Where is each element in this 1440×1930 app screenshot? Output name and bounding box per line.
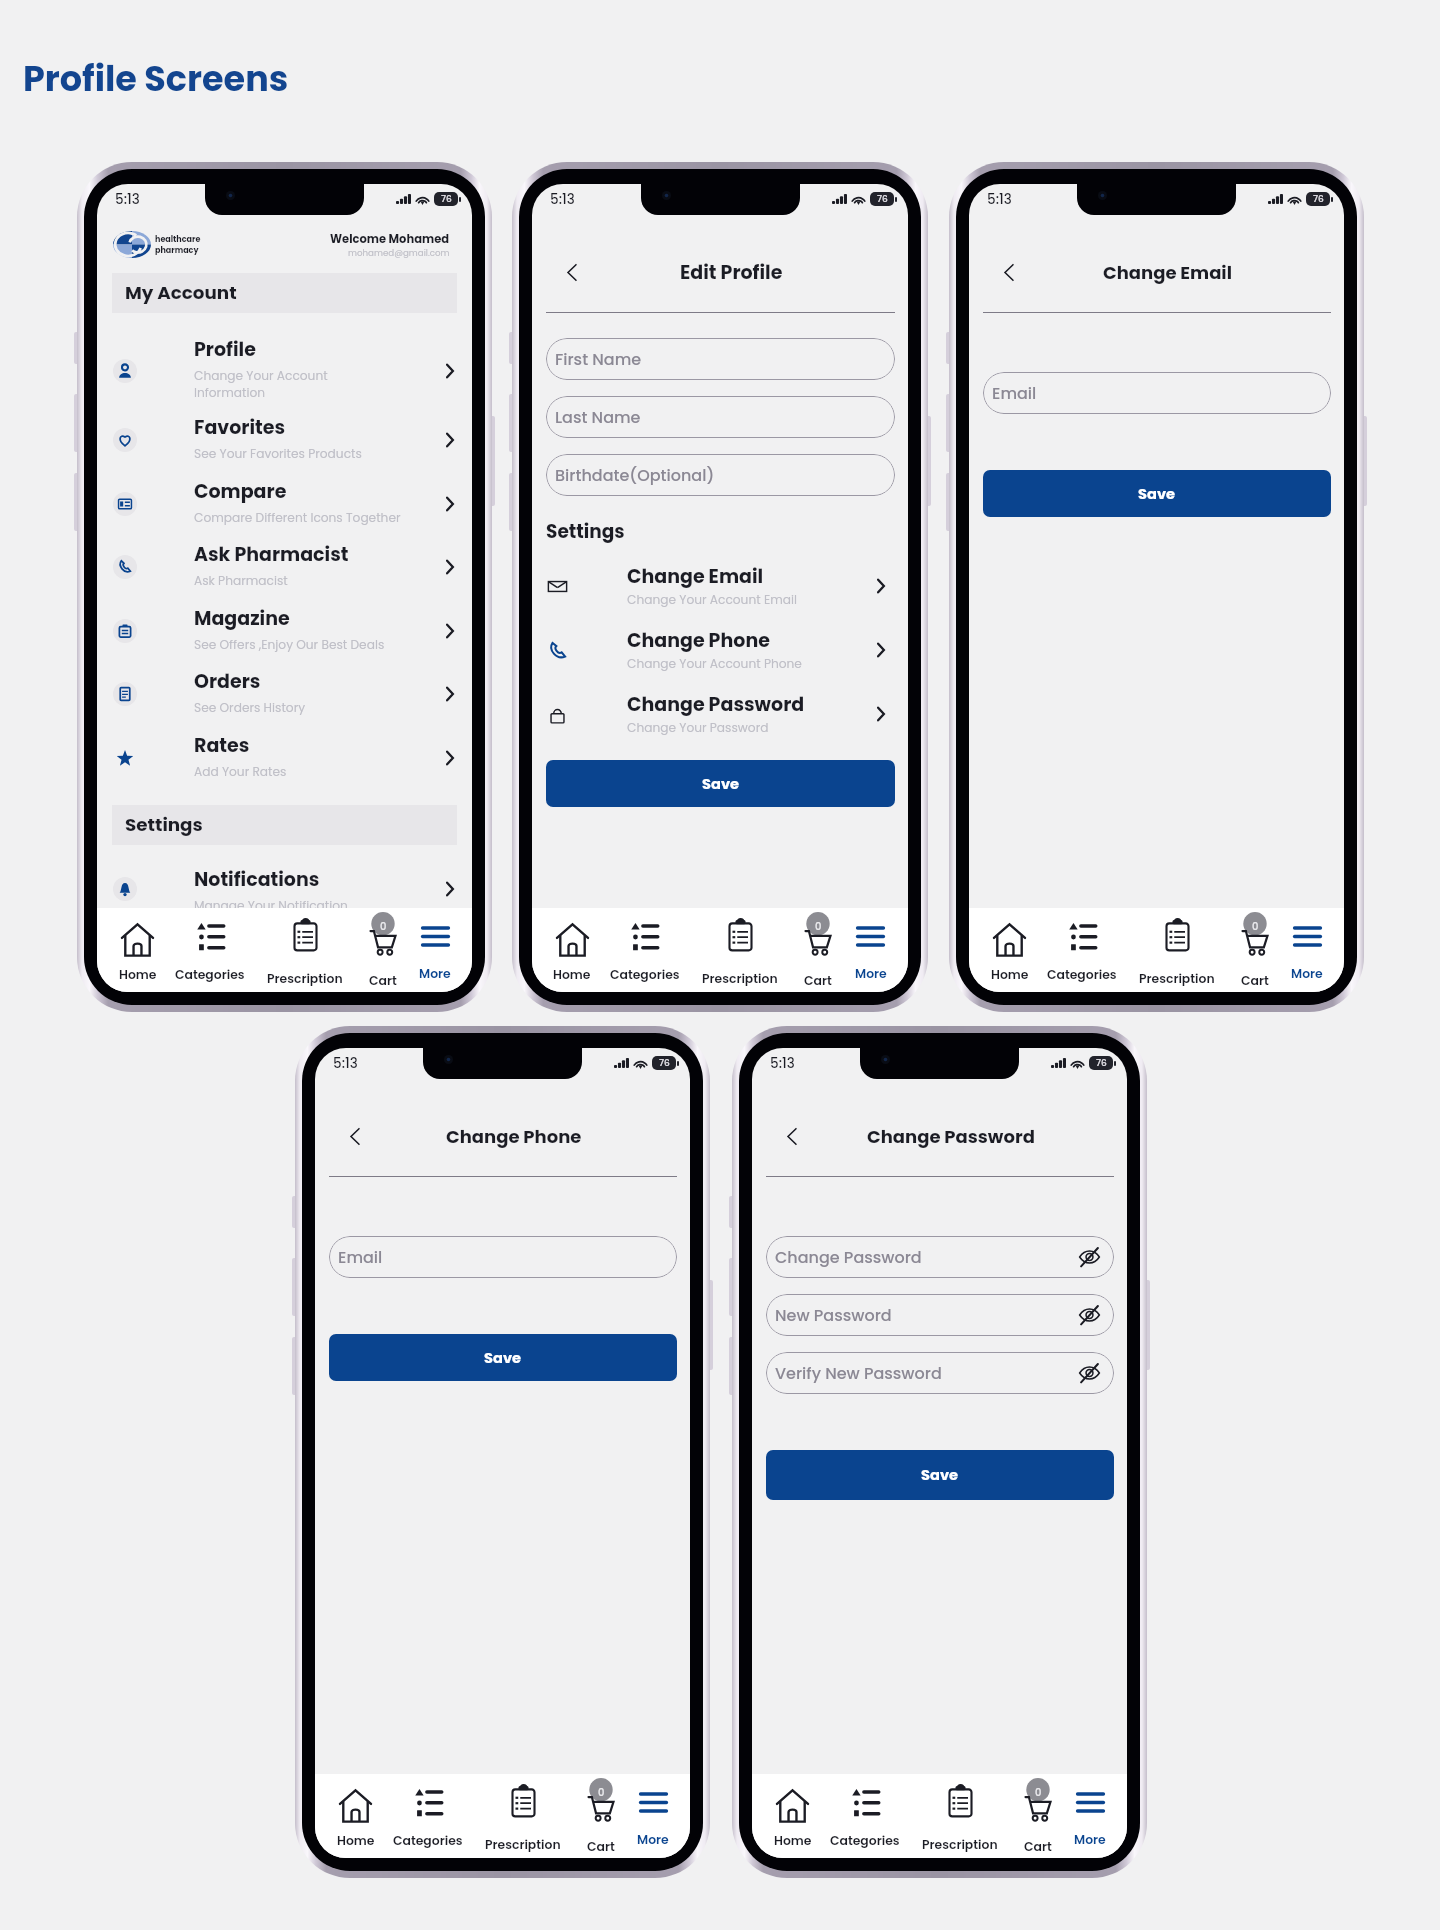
button[interactable]: More [833, 908, 908, 992]
staticText: Prescription [922, 1836, 998, 1853]
button[interactable]: More [1053, 1774, 1127, 1858]
staticText: Change Password [867, 1124, 1035, 1149]
staticText: Notifications [194, 866, 320, 893]
staticText: 0 [815, 919, 822, 933]
staticText: More [1074, 1831, 1106, 1848]
staticText: Home [991, 966, 1029, 983]
button[interactable]: 0 [368, 908, 398, 992]
button[interactable]: Profile [97, 333, 472, 408]
staticText: Birthdate(Optional) [555, 464, 715, 486]
button[interactable]: Verify New Password [766, 1352, 1114, 1394]
staticText: Cart [1024, 1838, 1052, 1855]
button[interactable]: Rates [97, 726, 472, 789]
button[interactable]: More [1270, 908, 1344, 992]
staticText: Cart [587, 1838, 615, 1855]
staticText: 5:13 [770, 1054, 795, 1073]
staticText: My Account [125, 280, 237, 306]
staticText: Ask Pharmacist [194, 541, 349, 568]
button[interactable]: Magazine [97, 599, 472, 662]
staticText: Categories [830, 1832, 900, 1849]
staticText: Last Name [555, 406, 641, 428]
staticText: Add Your Rates [194, 763, 287, 780]
button[interactable]: Birthdate(Optional) [546, 454, 895, 496]
button[interactable]: Home [315, 1774, 396, 1858]
button[interactable]: Prescription [677, 908, 803, 992]
staticText: Categories [393, 1832, 463, 1849]
button[interactable]: Orders [97, 662, 472, 726]
staticText: 0 [380, 919, 387, 933]
button[interactable]: Save [766, 1450, 1114, 1500]
staticText: Prescription [485, 1836, 561, 1853]
button[interactable]: New Password [766, 1294, 1114, 1336]
button[interactable]: Save [983, 470, 1331, 517]
button[interactable]: Prescription [897, 1774, 1023, 1858]
staticText: First Name [555, 348, 642, 370]
button[interactable]: Last Name [546, 396, 895, 438]
button[interactable]: Categories [178, 908, 242, 992]
button[interactable]: Home [532, 908, 612, 992]
staticText: Compare [194, 478, 287, 505]
staticText: Categories [1047, 966, 1117, 983]
staticText: Change Password [627, 691, 805, 718]
staticText: Edit Profile [680, 259, 783, 286]
button[interactable]: Categories [1050, 908, 1114, 992]
button[interactable]: Show password [1074, 1357, 1105, 1389]
button[interactable]: Prescription [460, 1774, 586, 1858]
button[interactable]: Categories [833, 1774, 897, 1858]
button[interactable]: Favorites [97, 408, 472, 472]
button[interactable]: Back [342, 1123, 368, 1149]
staticText: Categories [610, 966, 680, 983]
button[interactable]: More [616, 1774, 690, 1858]
staticText: healthcare [155, 234, 201, 245]
staticText: More [419, 965, 451, 982]
button[interactable]: Prescription [242, 908, 368, 992]
button[interactable]: First Name [546, 338, 895, 380]
staticText: Change Your Password [627, 719, 769, 736]
button[interactable]: Home [752, 1774, 833, 1858]
button[interactable]: Show password [1074, 1299, 1105, 1331]
button[interactable]: Save [329, 1334, 677, 1381]
button[interactable]: Notifications [97, 870, 472, 908]
button[interactable]: Home [969, 908, 1050, 992]
staticText: 76 [1096, 1057, 1107, 1070]
staticText: 5:13 [333, 1054, 358, 1073]
staticText: Categories [175, 966, 245, 983]
button[interactable]: Prescription [1114, 908, 1240, 992]
button[interactable]: Ask Pharmacist [97, 535, 472, 599]
button[interactable]: Home [97, 908, 178, 992]
button[interactable]: Change Password [766, 1236, 1114, 1278]
button[interactable]: Compare [97, 472, 472, 535]
button[interactable]: Change Email [532, 554, 908, 618]
button[interactable]: Change Password [532, 682, 908, 746]
staticText: Prescription [267, 970, 343, 987]
staticText: Save [921, 1465, 959, 1485]
staticText: Home [119, 966, 157, 983]
button[interactable]: Show password [1074, 1241, 1105, 1273]
staticText: Home [553, 966, 591, 983]
staticText: Change Your Account Phone [627, 655, 802, 672]
button[interactable]: Categories [396, 1774, 460, 1858]
staticText: mohamed@gmail.com [348, 247, 450, 258]
button[interactable]: Email [329, 1236, 677, 1278]
button[interactable]: Categories [612, 908, 677, 992]
button[interactable]: 0 [803, 908, 833, 992]
staticText: Rates [194, 732, 250, 759]
button[interactable]: Change Phone [532, 618, 908, 682]
staticText: 76 [441, 193, 452, 206]
button[interactable]: More [398, 908, 472, 992]
button[interactable]: 0 [1240, 908, 1270, 992]
staticText: Change Phone [446, 1124, 582, 1149]
button[interactable]: Back [559, 259, 585, 285]
button[interactable]: Save [546, 760, 895, 807]
button[interactable]: 0 [1023, 1774, 1053, 1858]
staticText: Save [484, 1348, 522, 1368]
staticText: Cart [1241, 972, 1269, 989]
staticText: Prescription [702, 970, 778, 987]
staticText: Change Your Account Email [627, 591, 797, 608]
button[interactable]: Back [779, 1123, 805, 1149]
button[interactable]: 0 [586, 1774, 616, 1858]
staticText: Profile [194, 336, 256, 363]
staticText: 0 [1035, 1785, 1042, 1799]
button[interactable]: Back [996, 259, 1022, 285]
button[interactable]: Email [983, 372, 1331, 414]
